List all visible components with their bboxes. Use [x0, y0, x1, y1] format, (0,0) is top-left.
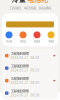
staticText: 工程项目管理: [10, 51, 28, 56]
staticText: 工程项目、每日答题、精品课程: [9, 6, 51, 10]
staticText: 2024-05-21 08:30: [10, 56, 39, 60]
staticText: 冷量: [12, 0, 26, 4]
staticText: 报销: [34, 39, 40, 43]
staticText: 考勤: [48, 39, 54, 43]
staticText: 审批: [20, 39, 26, 43]
staticText: 电池礼: [27, 0, 48, 4]
staticText: 工程项目管理: [10, 76, 28, 81]
staticText: 2024-05-21 08:30: [10, 81, 39, 85]
staticText: 申请: [6, 39, 12, 43]
staticText: 2024-05-21 08:30: [10, 69, 39, 72]
staticText: 工程项目管理: [10, 89, 28, 93]
staticText: 工程项目管理: [10, 64, 28, 68]
staticText: 2024-05-21 08:30: [10, 94, 39, 97]
